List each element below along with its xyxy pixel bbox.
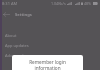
staticText: Remember login <box>29 59 66 65</box>
staticText: information <box>34 65 61 70</box>
button[interactable]: Advanced <box>0 50 100 60</box>
staticText: Advanced <box>5 53 24 58</box>
staticText: 48% <box>84 1 92 6</box>
button[interactable]: About <box>0 30 100 40</box>
button[interactable]: App updates <box>0 40 100 50</box>
button[interactable]: Back <box>2 10 11 19</box>
staticText: About <box>5 33 17 38</box>
staticText: 8:31 AM <box>2 1 18 6</box>
staticText: Settings <box>15 12 32 18</box>
staticText: App updates <box>5 43 29 48</box>
staticText: 1.04Kb/s <box>51 1 66 6</box>
